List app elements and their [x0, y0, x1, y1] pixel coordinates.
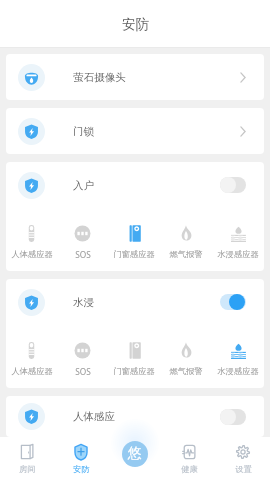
staticText: 房间 [19, 464, 36, 474]
button[interactable]: 人体感应器 [6, 225, 57, 259]
staticText: SOS [75, 249, 91, 260]
button[interactable]: 水浸 [6, 279, 264, 325]
staticText: 人体感应 [73, 410, 115, 423]
staticText: 燃气报警 [169, 249, 203, 259]
button[interactable]: 安防 [54, 437, 108, 480]
staticText: 水浸 [73, 296, 94, 309]
button[interactable]: 燃气报警 [160, 225, 212, 259]
button[interactable]: 水浸感应器 [212, 342, 264, 376]
button[interactable]: 萤石摄像头 [6, 54, 264, 100]
staticText: 门窗感应器 [113, 249, 155, 259]
button[interactable]: 入户 [6, 162, 264, 208]
button[interactable]: 燃气报警 [160, 342, 212, 376]
button[interactable]: 健康 [162, 437, 216, 480]
staticText: 悠 [128, 445, 142, 463]
button[interactable]: 人体感应 [6, 396, 264, 437]
staticText: 安防 [73, 464, 90, 474]
staticText: 水浸感应器 [217, 249, 259, 259]
button[interactable]: 关 [220, 177, 246, 193]
staticText: 人体感应器 [11, 366, 53, 376]
button[interactable]: 关 [220, 409, 246, 425]
staticText: 门窗感应器 [113, 366, 155, 376]
staticText: 水浸感应器 [217, 366, 259, 376]
staticText: 燃气报警 [169, 366, 203, 376]
staticText: 设置 [235, 464, 252, 474]
button[interactable]: 门窗感应器 [108, 342, 160, 376]
button[interactable]: 水浸感应器 [212, 225, 264, 259]
button[interactable]: 门窗感应器 [108, 225, 160, 259]
staticText: 萤石摄像头 [73, 71, 126, 84]
staticText: 安防 [122, 16, 149, 33]
button[interactable]: 开 [220, 294, 246, 310]
staticText: 人体感应器 [11, 249, 53, 259]
staticText: 入户 [73, 179, 94, 192]
button[interactable]: 房间 [0, 437, 54, 480]
button[interactable]: 悠然 [122, 441, 148, 467]
staticText: 健康 [181, 464, 198, 474]
staticText: 门锁 [73, 125, 94, 138]
button[interactable]: 设置 [216, 437, 270, 480]
button[interactable]: 人体感应器 [6, 342, 57, 376]
button[interactable]: SOS [57, 342, 108, 377]
staticText: SOS [75, 366, 91, 377]
button[interactable]: SOS [57, 225, 108, 260]
button[interactable]: 门锁 [6, 108, 264, 154]
